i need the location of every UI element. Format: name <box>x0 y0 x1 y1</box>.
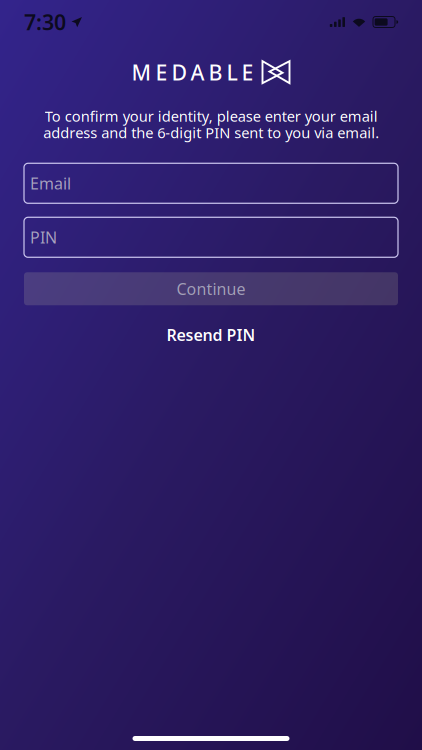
staticText: Email <box>30 173 71 194</box>
button[interactable]: PIN <box>24 217 398 257</box>
button[interactable]: Email <box>24 163 398 203</box>
staticText: Resend PIN <box>166 324 255 345</box>
staticText: PIN <box>30 227 57 248</box>
staticText: 7:30 <box>24 8 66 36</box>
staticText: Continue <box>176 278 245 299</box>
staticText: To confirm your identity, please enter y… <box>43 106 379 142</box>
staticText: MEDABLE <box>131 58 253 86</box>
button[interactable]: Resend PIN <box>150 316 271 353</box>
button[interactable]: Continue <box>24 272 398 305</box>
